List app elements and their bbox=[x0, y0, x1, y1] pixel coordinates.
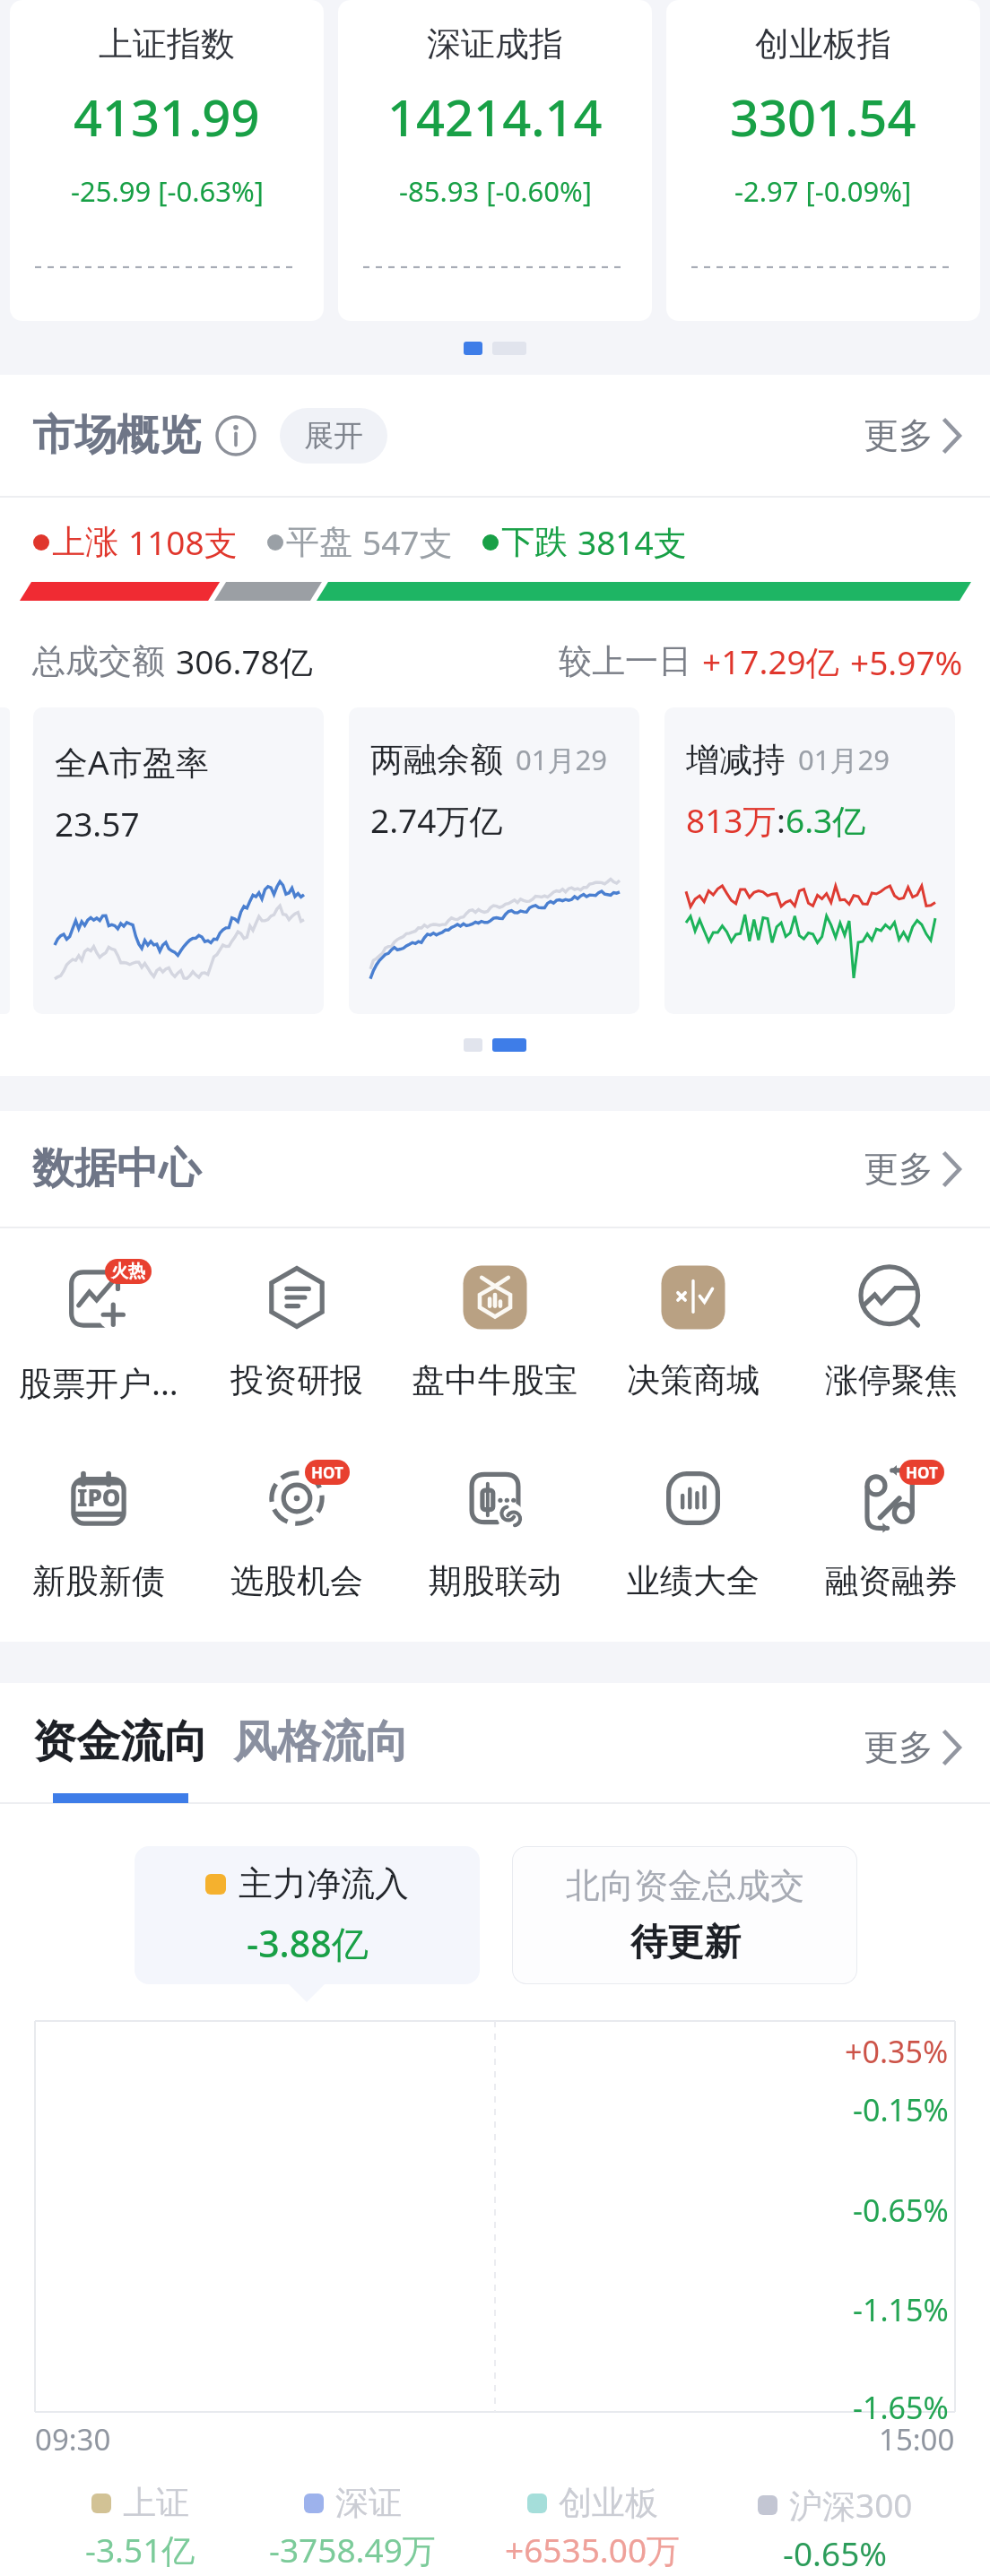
button[interactable]: 资金流向 bbox=[32, 1714, 208, 1803]
staticText: -3.51亿 bbox=[85, 2527, 195, 2572]
button[interactable]: HOT bbox=[197, 1460, 395, 1602]
staticText: 547支 bbox=[362, 519, 453, 565]
staticText: 3301.54 bbox=[730, 82, 916, 151]
staticText: 盘中牛股宝 bbox=[412, 1359, 577, 1401]
button[interactable]: 主力净流入 bbox=[135, 1846, 480, 1984]
staticText: 涨停聚焦 bbox=[825, 1359, 958, 1401]
other: Info bbox=[215, 415, 256, 456]
staticText: 总成交额 bbox=[32, 640, 165, 682]
staticText: +17.29亿 bbox=[702, 638, 839, 684]
staticText: -2.97 [-0.09%] bbox=[734, 172, 912, 210]
staticText: 新股新债 bbox=[32, 1560, 165, 1602]
staticText: 01月29 bbox=[516, 741, 607, 778]
staticText: 01月29 bbox=[798, 741, 890, 778]
staticText: -25.99 [-0.63%] bbox=[71, 172, 264, 210]
staticText: +0.35% bbox=[845, 2031, 949, 2072]
staticText: 平盘 bbox=[286, 521, 352, 563]
button[interactable]: 更多 bbox=[858, 1138, 967, 1200]
staticText: 两融余额 bbox=[370, 739, 503, 781]
button[interactable]: 两融余额 bbox=[349, 707, 639, 1014]
staticText: 23.57 bbox=[55, 801, 140, 846]
button[interactable]: 深证成指 bbox=[338, 0, 652, 321]
staticText: 股票开户... bbox=[19, 1359, 178, 1405]
staticText: 14214.14 bbox=[387, 82, 603, 151]
staticText: 投资研报 bbox=[230, 1359, 363, 1401]
staticText: 创业板 bbox=[559, 2482, 658, 2524]
staticText: 创业板指 bbox=[755, 22, 891, 65]
button[interactable]: 更多 bbox=[858, 404, 967, 466]
staticText: 3814支 bbox=[577, 519, 687, 565]
staticText: 火热 bbox=[111, 1261, 145, 1282]
staticText: HOT bbox=[906, 1462, 938, 1483]
button[interactable]: 业绩大全 bbox=[594, 1460, 792, 1602]
staticText: 4131.99 bbox=[74, 82, 260, 151]
staticText: 1108支 bbox=[128, 519, 238, 565]
button[interactable]: HOT bbox=[792, 1460, 990, 1602]
button[interactable]: 全A市盈率 bbox=[33, 707, 324, 1014]
staticText: -1.65% bbox=[853, 2387, 949, 2428]
button[interactable]: 展开 bbox=[280, 408, 387, 464]
staticText: -1.15% bbox=[853, 2289, 949, 2330]
staticText: 更多 bbox=[864, 1147, 934, 1191]
staticText: 风格流向 bbox=[233, 1714, 409, 1770]
staticText: 市场概览 bbox=[32, 409, 201, 462]
staticText: -3758.49万 bbox=[269, 2527, 436, 2572]
button[interactable]: 创业板指 bbox=[666, 0, 980, 321]
staticText: 306.78亿 bbox=[176, 638, 313, 684]
button[interactable]: 更多 bbox=[858, 1716, 967, 1778]
button[interactable]: 北向资金总成交 bbox=[512, 1846, 857, 1984]
staticText: 深证成指 bbox=[427, 22, 563, 65]
staticText: 增减持 bbox=[686, 739, 786, 781]
button[interactable]: 决策商城 bbox=[594, 1259, 792, 1401]
staticText: 深证 bbox=[335, 2482, 402, 2524]
staticText: +5.97% bbox=[850, 639, 963, 684]
staticText: 更多 bbox=[864, 413, 934, 457]
staticText: -0.65% bbox=[853, 2190, 949, 2231]
staticText: : bbox=[777, 797, 786, 842]
staticText: -3.88亿 bbox=[247, 1918, 369, 1968]
button[interactable]: 期股联动 bbox=[395, 1460, 594, 1602]
staticText: 决策商城 bbox=[627, 1359, 760, 1401]
staticText: 下跌 bbox=[501, 521, 568, 563]
staticText: 较上一日 bbox=[559, 640, 691, 682]
staticText: 上涨 bbox=[52, 521, 118, 563]
staticText: 展开 bbox=[304, 417, 363, 455]
staticText: 主力净流入 bbox=[239, 1862, 409, 1905]
staticText: 更多 bbox=[864, 1725, 934, 1769]
staticText: 09:30 bbox=[35, 2419, 111, 2459]
staticText: 期股联动 bbox=[429, 1560, 561, 1602]
staticText: 北向资金总成交 bbox=[566, 1864, 804, 1907]
button[interactable]: 沪深300 bbox=[758, 2482, 913, 2575]
staticText: IPO bbox=[77, 1481, 121, 1513]
staticText: 上证 bbox=[123, 2482, 189, 2524]
staticText: 6.3亿 bbox=[786, 797, 866, 843]
staticText: HOT bbox=[311, 1462, 343, 1483]
staticText: 沪深300 bbox=[789, 2482, 913, 2528]
staticText: 选股机会 bbox=[230, 1560, 363, 1602]
staticText: 待更新 bbox=[630, 1920, 741, 1966]
staticText: 全A市盈率 bbox=[55, 739, 209, 785]
staticText: 业绩大全 bbox=[627, 1560, 760, 1602]
button[interactable]: 投资研报 bbox=[197, 1259, 395, 1401]
staticText: 数据中心 bbox=[32, 1142, 201, 1195]
staticText: 融资融券 bbox=[825, 1560, 958, 1602]
button[interactable]: 风格流向 bbox=[233, 1714, 409, 1770]
staticText: -0.15% bbox=[853, 2089, 949, 2130]
staticText: 15:00 bbox=[879, 2419, 955, 2459]
button[interactable]: 涨停聚焦 bbox=[792, 1259, 990, 1401]
staticText: 资金流向 bbox=[32, 1714, 208, 1770]
button[interactable]: 盘中牛股宝 bbox=[395, 1259, 594, 1401]
staticText: +6535.00万 bbox=[505, 2527, 681, 2572]
button[interactable]: 深证 bbox=[269, 2482, 436, 2572]
button[interactable]: 上证 bbox=[85, 2482, 195, 2572]
staticText: 上证指数 bbox=[99, 22, 235, 65]
staticText: 813万 bbox=[686, 797, 777, 843]
button[interactable]: IPO bbox=[0, 1460, 197, 1602]
staticText: -85.93 [-0.60%] bbox=[399, 172, 592, 210]
button[interactable]: 创业板 bbox=[505, 2482, 681, 2572]
button[interactable]: 增减持 bbox=[664, 707, 955, 1014]
button[interactable]: 火热 bbox=[0, 1259, 197, 1405]
button[interactable]: 上证指数 bbox=[10, 0, 324, 321]
staticText: 2.74万亿 bbox=[370, 797, 503, 843]
staticText: -0.65% bbox=[783, 2530, 888, 2575]
